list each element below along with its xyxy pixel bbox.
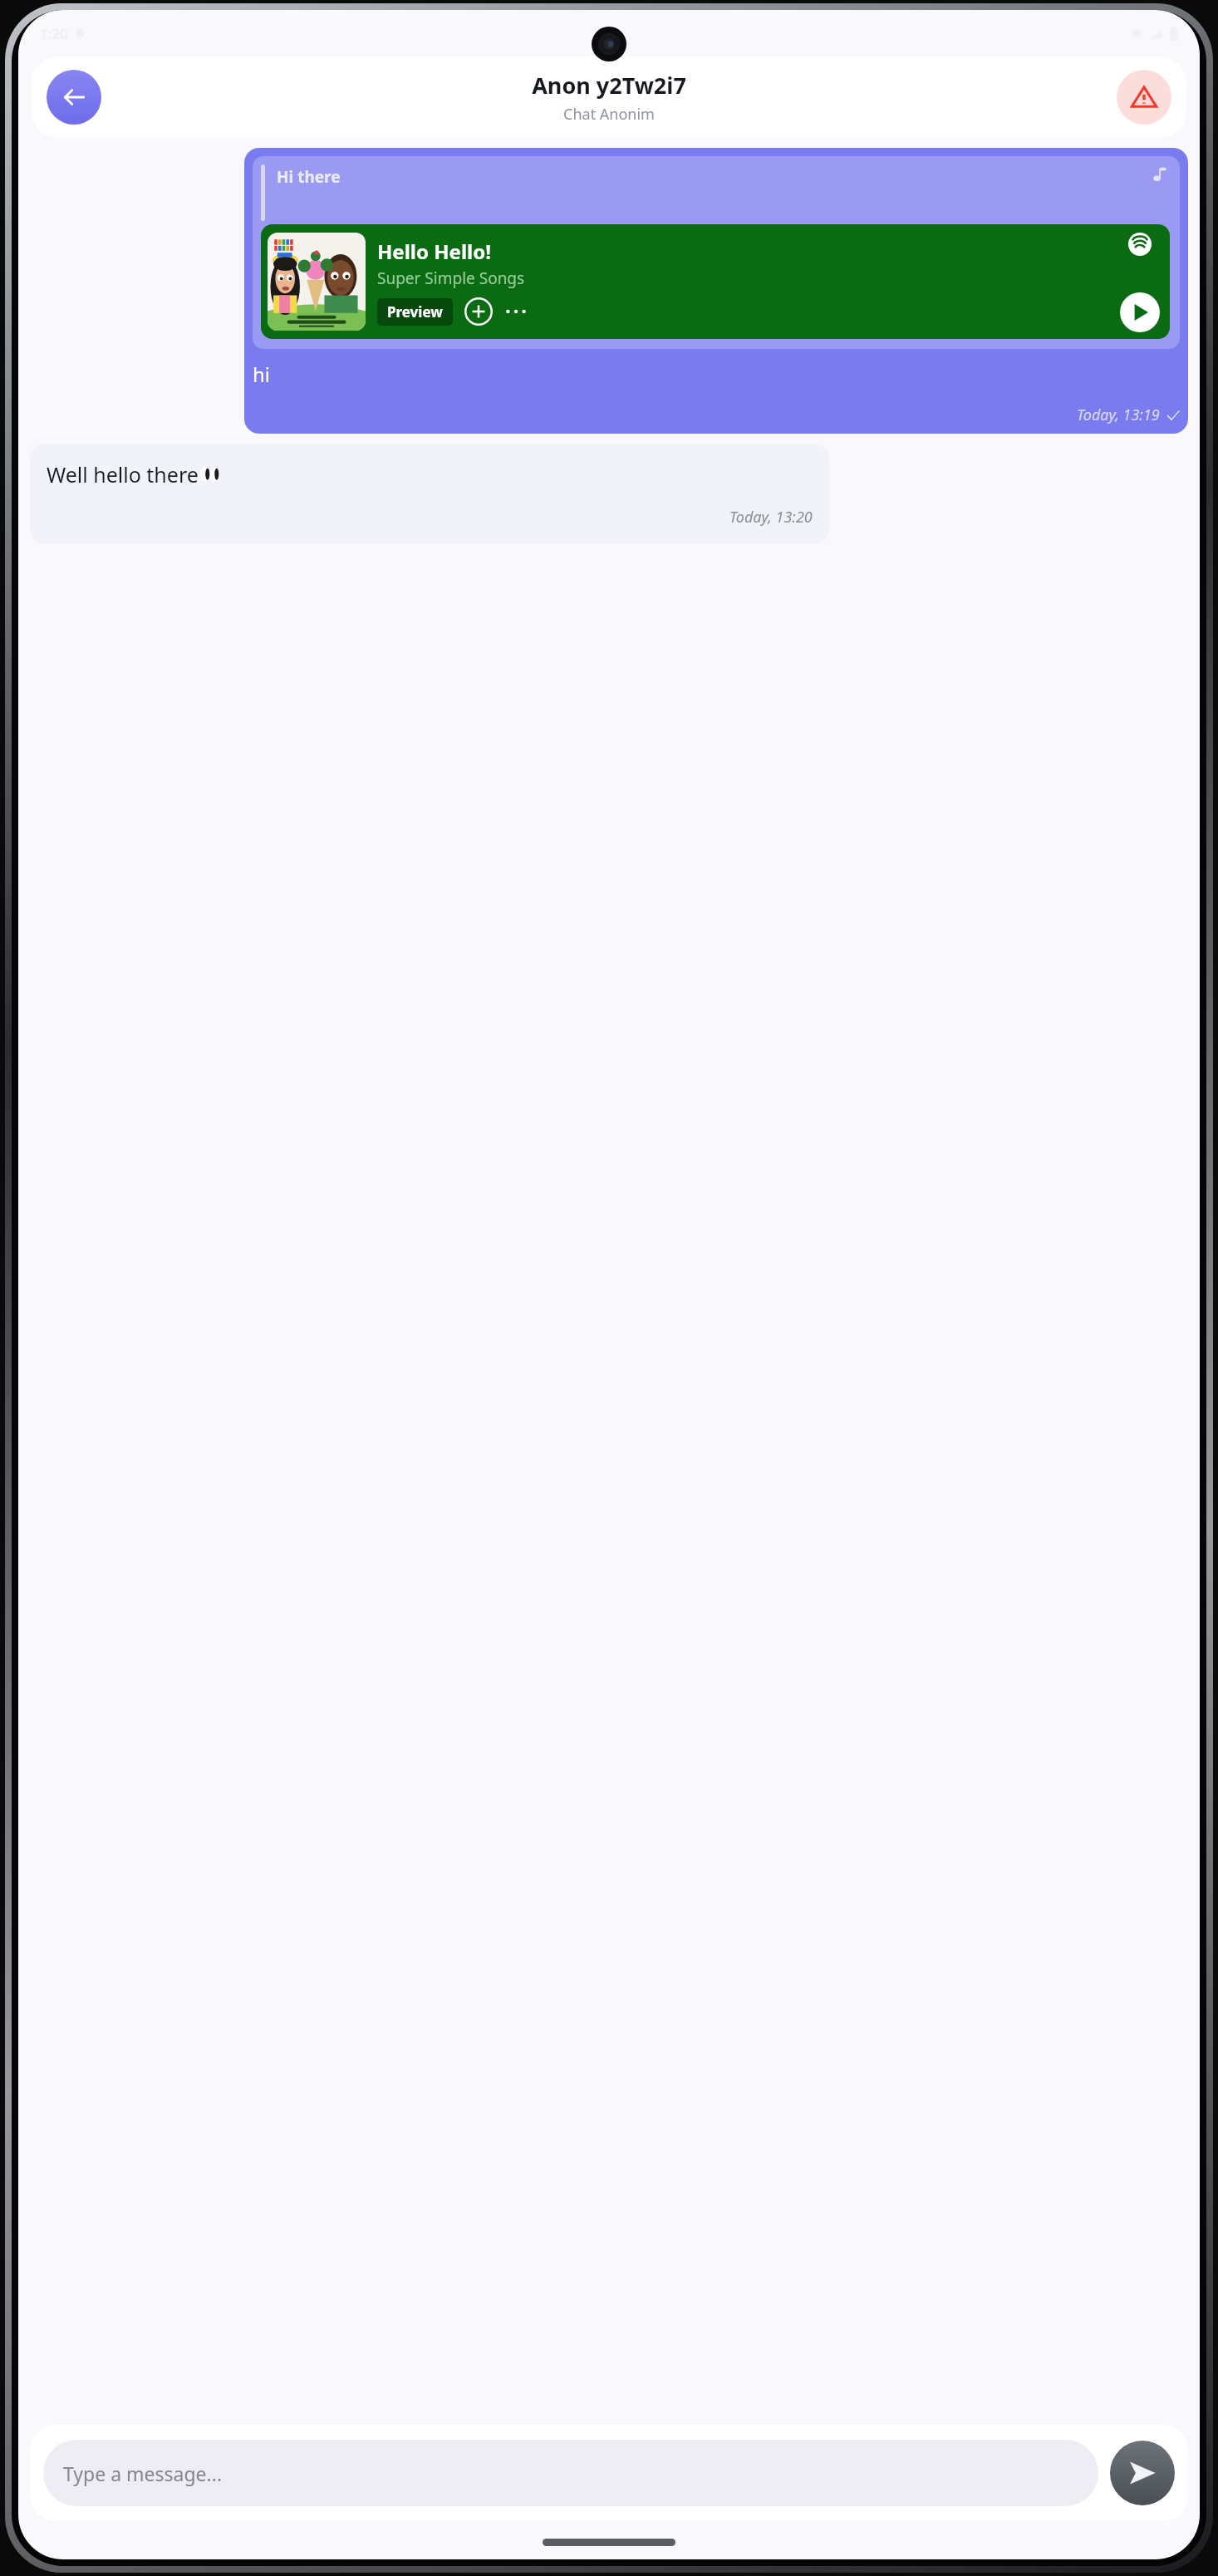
- staticText: Preview: [387, 302, 443, 321]
- staticText: Type a message...: [63, 2461, 223, 2486]
- button[interactable]: Hi there: [244, 148, 1188, 434]
- staticText: Hello Hello!: [377, 238, 491, 265]
- button[interactable]: Type a message...: [43, 2440, 1098, 2506]
- button[interactable]: Back: [47, 70, 101, 125]
- button[interactable]: Well hello there: [30, 444, 829, 544]
- button[interactable]: Play: [1120, 292, 1160, 332]
- staticText: 1:20: [40, 24, 68, 43]
- staticText: Anon y2Tw2i7: [532, 70, 686, 101]
- staticText: hi: [253, 361, 271, 388]
- button[interactable]: Preview: [377, 298, 453, 326]
- staticText: Hi there: [277, 166, 1152, 188]
- staticText: Today, 13:20: [729, 507, 813, 527]
- button[interactable]: Hello Hello!: [261, 224, 1170, 339]
- button[interactable]: Add: [464, 297, 493, 326]
- staticText: Super Simple Songs: [377, 267, 525, 289]
- button[interactable]: More options: [503, 298, 529, 325]
- staticText: Well hello there: [47, 460, 199, 488]
- staticText: Chat Anonim: [563, 104, 655, 125]
- button[interactable]: Report: [1117, 70, 1171, 125]
- button[interactable]: Send: [1110, 2441, 1175, 2505]
- staticText: Today, 13:19: [1077, 405, 1160, 425]
